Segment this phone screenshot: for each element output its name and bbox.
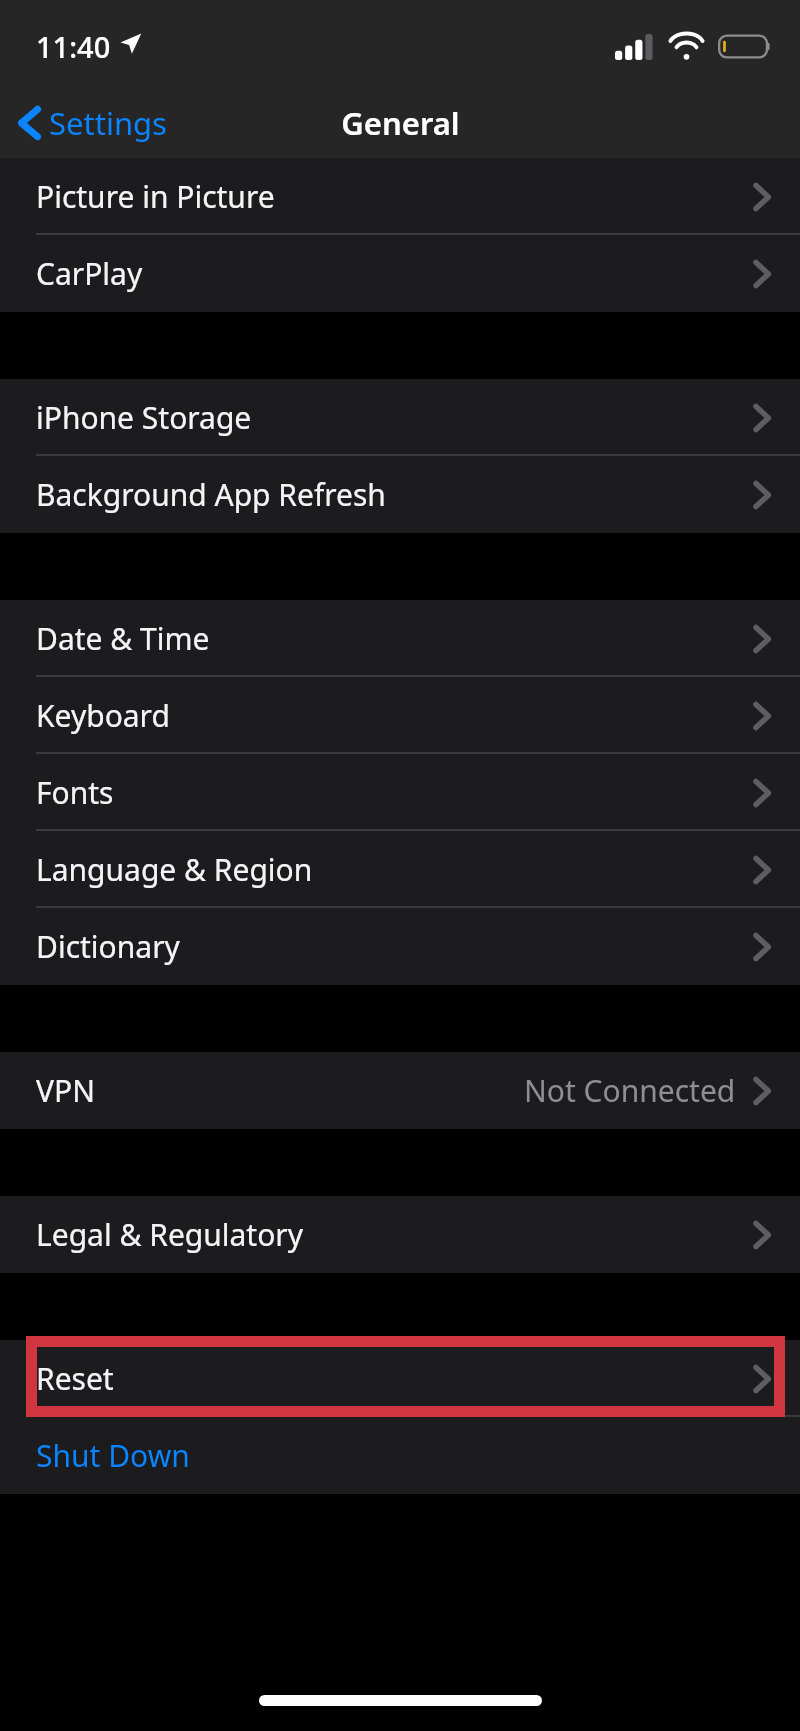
other: Open Background App Refresh <box>752 478 772 512</box>
button[interactable]: Fonts <box>0 754 800 831</box>
staticText: iPhone Storage <box>36 397 252 438</box>
staticText: 11:40 <box>36 27 111 66</box>
staticText: Settings <box>49 102 167 144</box>
other: Open CarPlay <box>752 257 772 291</box>
button[interactable]: Background App Refresh <box>0 456 800 533</box>
button[interactable]: Date & Time <box>0 600 800 677</box>
other: Open Legal & Regulatory <box>752 1218 772 1252</box>
other: Open Reset <box>752 1362 772 1396</box>
button[interactable]: Language & Region <box>0 831 800 908</box>
staticText: Shut Down <box>36 1435 190 1476</box>
staticText: Legal & Regulatory <box>36 1214 304 1255</box>
staticText: CarPlay <box>36 253 143 294</box>
button[interactable]: VPN <box>0 1052 800 1129</box>
button[interactable]: Keyboard <box>0 677 800 754</box>
staticText: Keyboard <box>36 695 170 736</box>
button[interactable]: CarPlay <box>0 235 800 312</box>
other: Open VPN <box>752 1074 772 1108</box>
button[interactable]: Reset <box>0 1340 800 1417</box>
staticText: Background App Refresh <box>36 474 386 515</box>
staticText: Picture in Picture <box>36 176 275 217</box>
staticText: General <box>341 102 460 144</box>
other: Open Language & Region <box>752 853 772 887</box>
button[interactable]: Legal & Regulatory <box>0 1196 800 1273</box>
staticText: Fonts <box>36 772 114 813</box>
button[interactable]: Settings <box>0 94 181 152</box>
button[interactable]: iPhone Storage <box>0 379 800 456</box>
other: Open iPhone Storage <box>752 401 772 435</box>
other: Open Keyboard <box>752 699 772 733</box>
other: Open Dictionary <box>752 930 772 964</box>
staticText: Not Connected <box>524 1070 736 1111</box>
other: Open Fonts <box>752 776 772 810</box>
staticText: Reset <box>36 1358 114 1399</box>
staticText: Date & Time <box>36 618 210 659</box>
other: Open Date & Time <box>752 622 772 656</box>
other: Open Picture in Picture <box>752 180 772 214</box>
button[interactable]: Dictionary <box>0 908 800 985</box>
button[interactable]: Shut Down <box>0 1417 800 1494</box>
button[interactable]: Picture in Picture <box>0 158 800 235</box>
staticText: VPN <box>36 1070 95 1111</box>
staticText: Dictionary <box>36 926 180 967</box>
staticText: Language & Region <box>36 849 313 890</box>
